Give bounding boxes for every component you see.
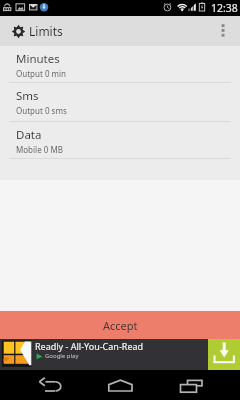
button[interactable]: Home: [80, 370, 160, 400]
button[interactable]: Back: [0, 370, 80, 400]
button[interactable]: Accept: [0, 311, 240, 339]
staticText: Minutes: [16, 51, 60, 67]
button[interactable]: Install: [208, 339, 240, 370]
staticText: Sms: [16, 88, 39, 104]
button[interactable]: More options: [211, 16, 240, 46]
staticText: Output 0 min: [16, 68, 67, 79]
staticText: Output 0 sms: [16, 105, 67, 116]
button[interactable]: Sms: [0, 83, 240, 121]
staticText: Mobile 0 MB: [16, 144, 63, 155]
staticText: Google play: [45, 352, 79, 360]
staticText: Accept: [103, 318, 138, 333]
button[interactable]: Data: [0, 122, 240, 158]
staticText: Readly - All-You-Can-Read: [35, 340, 144, 352]
button[interactable]: Minutes: [0, 46, 240, 82]
button[interactable]: Recent apps: [160, 370, 240, 400]
staticText: Data: [16, 127, 42, 143]
staticText: 12:38: [211, 1, 238, 15]
staticText: Limits: [29, 23, 63, 39]
button[interactable]: Readly - All-You-Can-Read: [0, 339, 240, 370]
